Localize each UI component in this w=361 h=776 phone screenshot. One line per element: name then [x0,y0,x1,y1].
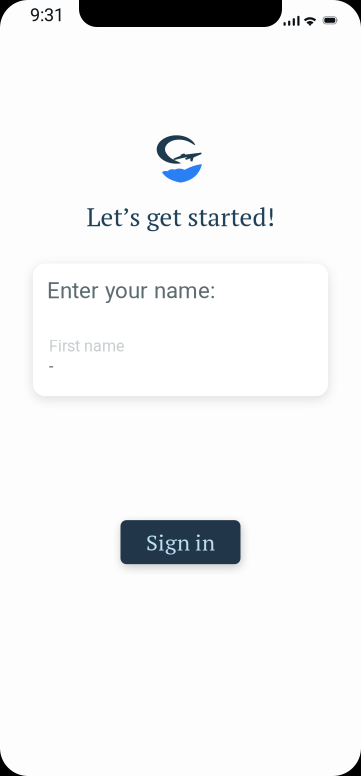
button[interactable]: Sign in [120,520,240,564]
staticText: - [49,357,53,376]
staticText: Let’s get started! [86,200,274,234]
staticText: Enter your name: [47,278,215,304]
staticText: 9:31 [30,4,64,26]
staticText: Sign in [146,528,215,557]
staticText: First name [49,337,124,355]
